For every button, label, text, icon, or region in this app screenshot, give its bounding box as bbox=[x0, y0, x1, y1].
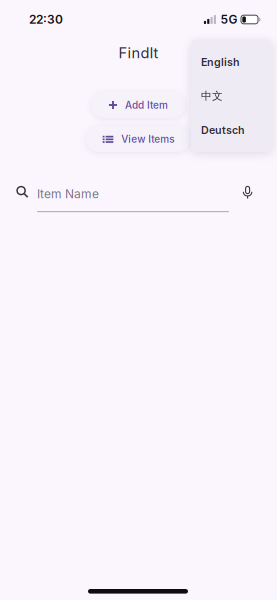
button[interactable]: View Items bbox=[86, 126, 191, 152]
button[interactable]: English bbox=[191, 45, 272, 79]
staticText: FindIt bbox=[118, 44, 158, 62]
staticText: 5G bbox=[220, 12, 237, 27]
staticText: Deutsch bbox=[201, 123, 245, 136]
staticText: 中文 bbox=[201, 89, 223, 103]
button[interactable]: Deutsch bbox=[191, 113, 272, 147]
button[interactable]: 中文 bbox=[191, 79, 272, 113]
staticText: English bbox=[201, 55, 240, 68]
staticText: Add Item bbox=[125, 99, 168, 111]
staticText: Item Name bbox=[37, 187, 99, 201]
staticText: View Items bbox=[121, 133, 174, 145]
staticText: 22:30 bbox=[29, 12, 63, 27]
button[interactable]: Add Item bbox=[91, 92, 185, 118]
button[interactable]: Voice search bbox=[243, 186, 252, 199]
